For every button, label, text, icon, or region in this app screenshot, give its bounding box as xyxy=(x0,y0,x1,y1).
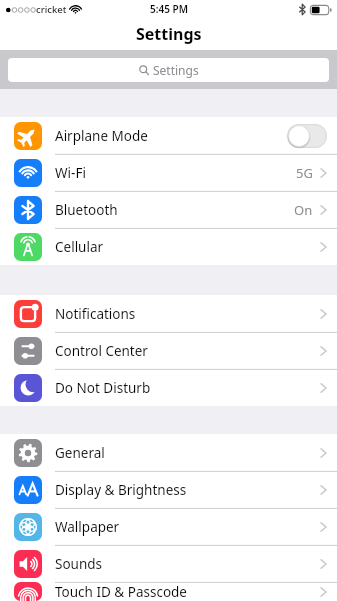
staticText: Wallpaper xyxy=(55,518,120,536)
button[interactable]: Wi-Fi xyxy=(0,154,337,191)
button[interactable]: Airplane Mode toggle, off xyxy=(287,124,327,148)
button[interactable]: Search Settings xyxy=(8,58,329,82)
staticText: Settings xyxy=(136,23,202,45)
staticText: Settings xyxy=(153,62,199,78)
button[interactable]: Notifications xyxy=(0,295,337,332)
button[interactable]: Control Center xyxy=(0,332,337,369)
staticText: Cellular xyxy=(55,238,104,256)
staticText: 5:45 PM xyxy=(150,2,188,16)
staticText: Do Not Disturb xyxy=(55,379,151,397)
staticText: Control Center xyxy=(55,342,148,360)
staticText: Airplane Mode xyxy=(55,127,148,145)
button[interactable]: Do Not Disturb xyxy=(0,369,337,406)
staticText: General xyxy=(55,444,105,462)
button[interactable]: General xyxy=(0,434,337,471)
staticText: Display & Brightness xyxy=(55,481,187,499)
button[interactable]: Sounds xyxy=(0,545,337,582)
staticText: Bluetooth xyxy=(55,201,118,219)
button[interactable]: Touch ID & Passcode xyxy=(0,582,337,601)
staticText: 5G xyxy=(296,164,313,182)
staticText: cricket xyxy=(36,3,67,16)
staticText: On xyxy=(294,201,313,219)
staticText: Wi-Fi xyxy=(55,164,86,182)
button[interactable]: Airplane Mode xyxy=(0,117,337,154)
button[interactable]: Display & Brightness xyxy=(0,471,337,508)
button[interactable]: Cellular xyxy=(0,228,337,265)
staticText: Sounds xyxy=(55,555,103,573)
button[interactable]: Wallpaper xyxy=(0,508,337,545)
staticText: Notifications xyxy=(55,305,136,323)
staticText: Touch ID & Passcode xyxy=(55,583,187,601)
button[interactable]: Bluetooth xyxy=(0,191,337,228)
